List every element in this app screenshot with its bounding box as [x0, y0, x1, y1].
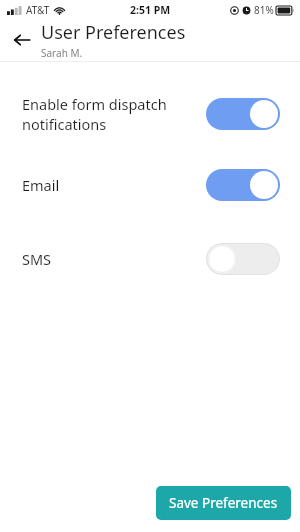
- staticText: SMS: [22, 249, 52, 269]
- staticText: 81%: [254, 3, 274, 17]
- button[interactable]: Save Preferences: [156, 486, 291, 520]
- staticText: User Preferences: [41, 20, 186, 45]
- button[interactable]: Enable form dispatch notifications: [0, 86, 300, 142]
- staticText: Email: [22, 175, 60, 195]
- staticText: AT&T: [26, 3, 50, 17]
- staticText: 2:51 PM: [130, 3, 171, 17]
- button[interactable]: Email: [0, 165, 300, 205]
- staticText: Save Preferences: [169, 494, 278, 512]
- button[interactable]: SMS: [0, 239, 300, 279]
- button[interactable]: Toggle off: [206, 243, 280, 275]
- button[interactable]: Toggle on: [206, 169, 280, 201]
- staticText: Sarah M.: [41, 46, 83, 60]
- button[interactable]: Back: [8, 26, 36, 54]
- staticText: Enable form dispatch notifications: [22, 94, 167, 135]
- button[interactable]: Toggle on: [206, 98, 280, 130]
